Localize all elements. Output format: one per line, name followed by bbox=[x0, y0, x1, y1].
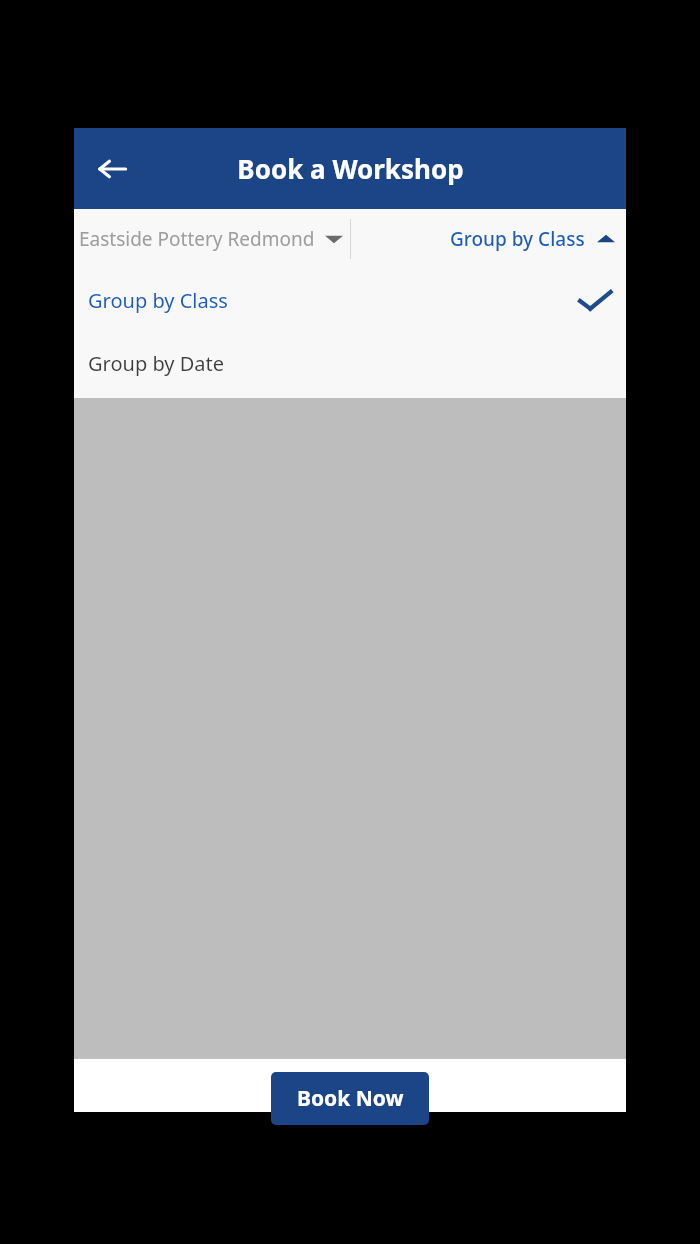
button[interactable]: Eastside Pottery Redmond bbox=[74, 209, 350, 269]
staticText: Group by Class bbox=[88, 287, 228, 314]
staticText: Book Now bbox=[297, 1084, 404, 1113]
button[interactable]: Group by Date bbox=[74, 332, 626, 395]
button[interactable]: Back bbox=[89, 145, 137, 193]
staticText: Book a Workshop bbox=[237, 151, 464, 186]
button[interactable]: Group by Class bbox=[74, 269, 626, 332]
staticText: Group by Class bbox=[450, 226, 585, 252]
staticText: Group by Date bbox=[88, 350, 224, 377]
staticText: Eastside Pottery Redmond bbox=[79, 226, 315, 252]
button[interactable]: Group by Class bbox=[426, 209, 626, 269]
button[interactable]: Book Now bbox=[271, 1072, 429, 1125]
